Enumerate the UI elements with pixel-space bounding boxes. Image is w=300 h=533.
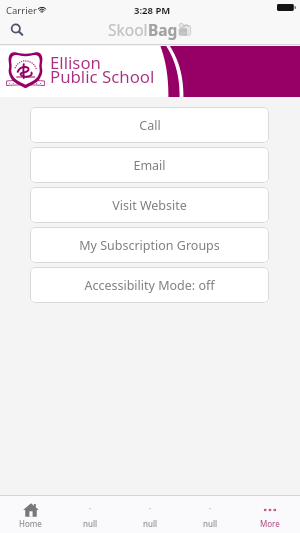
staticText: null [203,518,218,529]
staticText: Email [133,157,166,174]
staticText: Carrier [6,4,37,17]
staticText: Visit Website [112,197,187,214]
button[interactable]: Home [0,496,60,533]
staticText: Home [19,518,42,529]
staticText: Call [139,117,161,134]
button[interactable]: Search [4,20,28,44]
button[interactable]: My Subscription Groups [30,227,269,263]
button[interactable]: null [60,496,120,533]
button[interactable]: Email [30,147,269,183]
staticText: My Subscription Groups [79,237,220,254]
button[interactable]: More [240,496,300,533]
button[interactable]: null [120,496,180,533]
button[interactable]: Accessibility Mode: off [30,267,269,303]
staticText: 3:28 PM [134,4,171,17]
staticText: null [83,518,98,529]
staticText: null [143,518,158,529]
staticText: More [260,518,280,529]
staticText: Skool [108,19,148,40]
button[interactable]: null [180,496,240,533]
staticText: Ellison Public School [50,51,155,88]
button[interactable]: Call [30,107,269,143]
staticText: Bag [148,19,178,40]
button[interactable]: Visit Website [30,187,269,223]
staticText: Accessibility Mode: off [84,277,215,294]
